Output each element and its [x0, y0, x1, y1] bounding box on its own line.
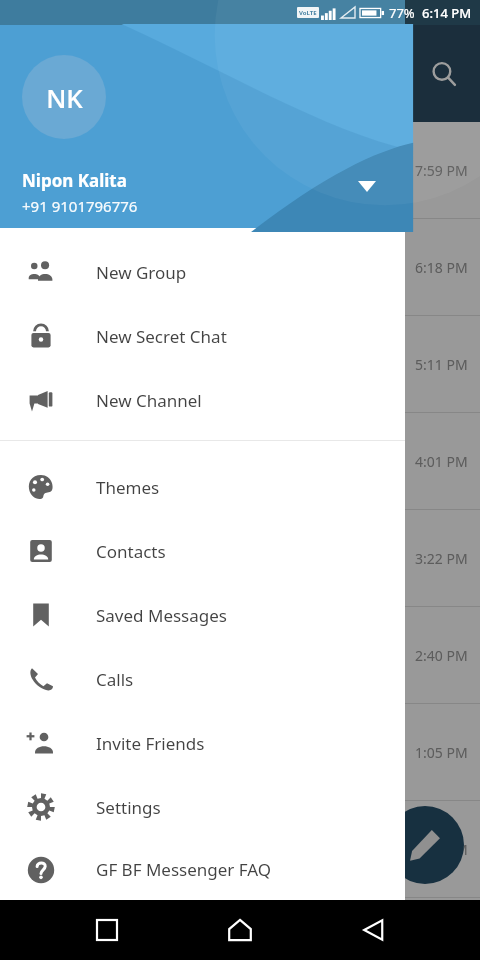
staticText: 6:18 PM — [415, 258, 468, 277]
button[interactable]: 1:05 PM — [0, 704, 480, 800]
button[interactable]: Recent apps — [81, 904, 133, 956]
button[interactable]: Contacts — [0, 519, 405, 583]
staticText: NK — [46, 80, 83, 115]
button[interactable]: Calls — [0, 647, 405, 711]
staticText: 6:14 PM — [422, 4, 472, 22]
button[interactable]: New message — [386, 806, 464, 884]
button[interactable]: 11:09 AM — [0, 898, 480, 900]
button[interactable]: Profile photo — [0, 25, 405, 228]
button[interactable]: Invite Friends — [0, 711, 405, 775]
staticText: Saved Messages — [96, 604, 227, 627]
staticText: VoLTE — [299, 9, 317, 17]
button[interactable]: New Channel — [0, 368, 405, 432]
staticText: 4:01 PM — [415, 452, 468, 471]
staticText: Contacts — [96, 540, 166, 563]
button[interactable]: GF BF Messenger FAQ — [0, 839, 405, 900]
button[interactable]: 7:59 PM — [0, 122, 480, 218]
staticText: 7:59 PM — [415, 161, 468, 180]
button[interactable]: 6:18 PM — [0, 219, 480, 315]
staticText: Calls — [96, 668, 134, 691]
staticText: New Group — [96, 261, 187, 284]
staticText: 2:40 PM — [415, 646, 468, 665]
button[interactable]: 3:22 PM — [0, 510, 480, 606]
button[interactable]: Saved Messages — [0, 583, 405, 647]
staticText: +91 9101796776 — [22, 196, 138, 216]
staticText: 12:31 PM — [407, 840, 468, 859]
button[interactable]: Settings — [0, 775, 405, 839]
button[interactable]: Profile photo — [22, 55, 106, 139]
staticText: Invite Friends — [96, 732, 205, 755]
staticText: 1:05 PM — [415, 743, 468, 762]
staticText: 3:22 PM — [415, 549, 468, 568]
button[interactable]: 12:31 PM — [0, 801, 480, 897]
staticText: New Secret Chat — [96, 325, 227, 348]
button[interactable]: 4:01 PM — [0, 413, 480, 509]
button[interactable]: New Group — [0, 240, 405, 304]
staticText: New Channel — [96, 389, 202, 412]
staticText: Themes — [96, 476, 160, 499]
staticText: Settings — [96, 796, 161, 819]
button[interactable]: Back — [347, 904, 399, 956]
staticText: GF BF Messenger FAQ — [96, 858, 272, 881]
button[interactable]: Search — [420, 50, 468, 98]
button[interactable]: 2:40 PM — [0, 607, 480, 703]
button[interactable]: Home — [214, 904, 266, 956]
staticText: Nipon Kalita — [22, 169, 127, 192]
staticText: 77% — [389, 4, 415, 22]
staticText: 5:11 PM — [415, 355, 468, 374]
button[interactable]: 5:11 PM — [0, 316, 480, 412]
button[interactable]: Expand accounts — [347, 166, 387, 206]
button[interactable]: New Secret Chat — [0, 304, 405, 368]
button[interactable]: Themes — [0, 455, 405, 519]
